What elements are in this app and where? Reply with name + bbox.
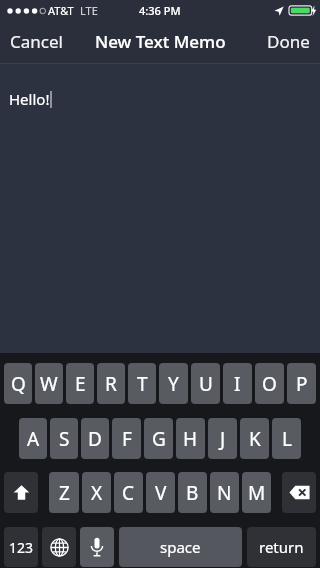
button[interactable]: W (35, 363, 63, 404)
staticText: N (217, 480, 232, 506)
staticText: 4:36 PM (139, 3, 181, 18)
button[interactable]: E (66, 363, 94, 404)
button[interactable]: return (247, 527, 316, 567)
button[interactable]: T (128, 363, 156, 404)
staticText: Done (267, 30, 310, 53)
button[interactable]: 123 (4, 527, 38, 567)
staticText: M (248, 480, 266, 506)
button[interactable]: Dictation (80, 527, 114, 567)
staticText: Hello! (9, 89, 50, 109)
button[interactable]: Backspace (282, 472, 316, 513)
button[interactable]: A (19, 418, 47, 459)
button[interactable]: Switch keyboard language (42, 527, 76, 567)
staticText: Y (168, 371, 179, 397)
staticText: space (160, 537, 201, 557)
button[interactable]: J (208, 418, 237, 459)
button[interactable]: U (191, 363, 220, 404)
button[interactable]: O (255, 363, 284, 404)
staticText: I (234, 371, 241, 397)
staticText: H (183, 426, 198, 452)
button[interactable]: B (178, 472, 207, 513)
staticText: P (296, 371, 308, 397)
button[interactable]: Z (49, 472, 79, 513)
button[interactable]: M (242, 472, 271, 513)
button[interactable]: H (176, 418, 205, 459)
staticText: K (249, 426, 261, 452)
staticText: T (137, 371, 148, 397)
staticText: X (91, 480, 103, 506)
button[interactable]: D (81, 418, 109, 459)
button[interactable]: Hello! (0, 63, 320, 353)
staticText: L (282, 426, 292, 452)
staticText: R (105, 371, 117, 397)
button[interactable]: V (146, 472, 175, 513)
button[interactable]: space (119, 527, 242, 567)
button[interactable]: F (112, 418, 141, 459)
staticText: W (40, 371, 58, 397)
staticText: E (75, 371, 86, 397)
button[interactable]: N (210, 472, 239, 513)
staticText: G (152, 426, 166, 452)
button[interactable]: I (223, 363, 252, 404)
button[interactable]: P (287, 363, 316, 404)
button[interactable]: C (114, 472, 143, 513)
staticText: F (122, 426, 132, 452)
staticText: D (88, 426, 102, 452)
staticText: Q (11, 371, 26, 397)
staticText: B (186, 480, 199, 506)
button[interactable]: L (272, 418, 301, 459)
staticText: O (262, 371, 277, 397)
staticText: A (27, 426, 40, 452)
button[interactable]: X (82, 472, 111, 513)
button[interactable]: Q (4, 363, 32, 404)
button[interactable]: G (144, 418, 173, 459)
staticText: New Text Memo (95, 30, 226, 53)
button[interactable]: Cancel (0, 21, 73, 62)
staticText: AT&T (48, 3, 74, 18)
button[interactable]: R (97, 363, 125, 404)
staticText: Z (59, 480, 70, 506)
staticText: S (59, 426, 70, 452)
button[interactable]: Shift (4, 472, 38, 513)
staticText: J (220, 426, 226, 452)
button[interactable]: Y (159, 363, 188, 404)
staticText: Cancel (10, 30, 63, 53)
staticText: LTE (80, 3, 98, 18)
staticText: 123 (9, 538, 34, 557)
button[interactable]: S (50, 418, 78, 459)
staticText: return (259, 537, 304, 557)
staticText: V (155, 480, 167, 506)
staticText: C (122, 480, 135, 506)
staticText: U (199, 371, 213, 397)
button[interactable]: K (240, 418, 269, 459)
button[interactable]: Done (257, 21, 320, 62)
